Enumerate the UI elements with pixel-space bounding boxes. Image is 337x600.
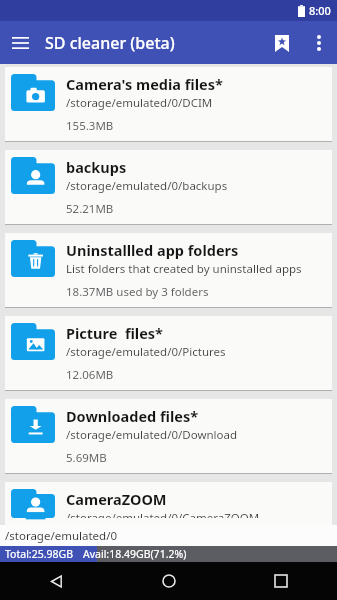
staticText: Picture files* <box>66 323 163 343</box>
staticText: /storage/emulated/0/Pictures <box>66 344 226 360</box>
button[interactable]: backups <box>5 150 332 225</box>
staticText: /storage/emulated/0/Download <box>66 427 238 443</box>
button[interactable]: More options <box>301 25 337 61</box>
staticText: SD cleaner (beta) <box>45 32 175 54</box>
button[interactable]: Home <box>113 562 225 600</box>
button[interactable]: Back <box>0 562 113 600</box>
staticText: 5.69MB <box>66 450 107 466</box>
staticText: Avail:18.49GB(71.2%) <box>83 547 187 561</box>
staticText: 8:00 <box>309 3 331 18</box>
button[interactable]: Downloaded files* <box>5 399 332 474</box>
staticText: 18.37MB used by 3 folders <box>66 284 209 300</box>
staticText: Uninstallled app folders <box>66 240 239 260</box>
staticText: Camera's media files* <box>66 74 223 94</box>
staticText: 12.06MB <box>66 367 114 383</box>
staticText: /storage/emulated/0/DCIM <box>66 95 213 111</box>
staticText: /storage/emulated/0 <box>5 528 118 544</box>
staticText: /storage/emulated/0/backups <box>66 178 228 194</box>
staticText: CameraZOOM <box>66 489 167 509</box>
staticText: Downloaded files* <box>66 406 199 426</box>
button[interactable]: Recent apps <box>225 562 337 600</box>
button[interactable]: Uninstallled app folders <box>5 233 332 308</box>
button[interactable]: Bookmarks <box>263 24 301 62</box>
staticText: backups <box>66 157 127 177</box>
button[interactable]: Open navigation drawer <box>0 23 40 63</box>
staticText: 155.3MB <box>66 118 114 134</box>
staticText: Total:25.98GB <box>5 547 73 561</box>
button[interactable]: Picture files* <box>5 316 332 391</box>
staticText: /storage/emulated/0/CameraZOOM <box>66 510 260 518</box>
staticText: List folders that created by uninstalled… <box>66 261 302 277</box>
button[interactable]: CameraZOOM <box>5 482 332 525</box>
staticText: 52.21MB <box>66 201 114 217</box>
button[interactable]: Camera's media files* <box>5 67 332 142</box>
